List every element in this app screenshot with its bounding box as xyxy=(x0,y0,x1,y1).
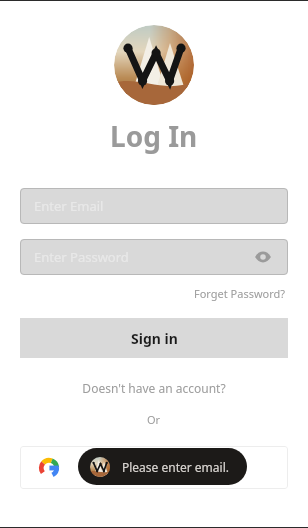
staticText: Enter Password xyxy=(34,248,129,266)
staticText: Sign in xyxy=(131,329,178,348)
button[interactable]: Show password xyxy=(252,246,274,268)
staticText: Sign in with Google xyxy=(88,458,233,478)
button[interactable]: Forget Password? xyxy=(192,284,288,303)
button[interactable]: Enter Password xyxy=(20,239,288,275)
staticText: Doesn't have an account? xyxy=(82,380,226,396)
staticText: Log In xyxy=(110,117,198,155)
staticText: Forget Password? xyxy=(194,286,286,301)
button[interactable]: Sign in xyxy=(20,318,288,358)
staticText: Or xyxy=(147,412,161,427)
button[interactable]: Doesn't have an account? xyxy=(76,378,232,398)
staticText: Enter Email xyxy=(34,197,104,215)
button[interactable]: Sign in with Google xyxy=(20,446,288,489)
staticText: Please enter email. xyxy=(122,459,229,475)
button[interactable]: Enter Email xyxy=(20,188,288,224)
